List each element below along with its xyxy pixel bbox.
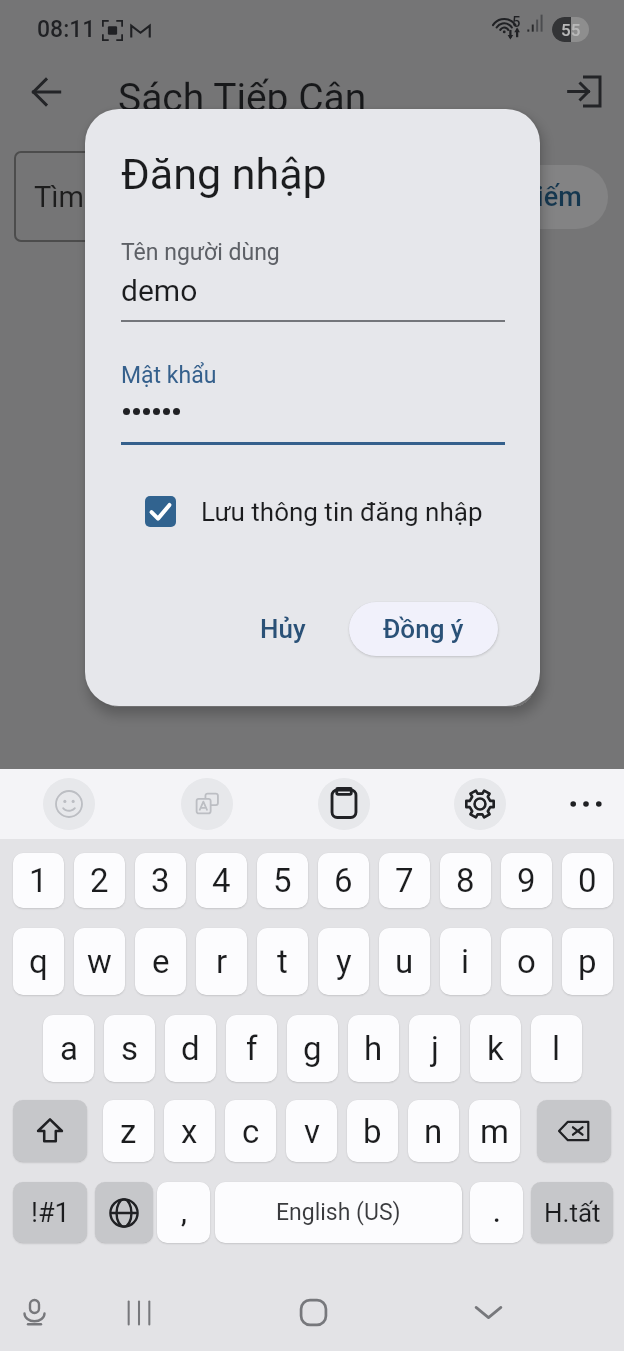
button[interactable]: Đồng ý xyxy=(349,602,498,656)
button[interactable]: h xyxy=(348,1015,399,1082)
button[interactable]: . xyxy=(470,1182,523,1243)
staticText: Lưu thông tin đăng nhập xyxy=(201,497,483,527)
staticText: l xyxy=(552,1029,561,1068)
button[interactable]: Translate xyxy=(181,778,233,830)
staticText: q xyxy=(29,942,48,981)
staticText: Tìm kiếm xyxy=(469,181,582,213)
button[interactable]: H.tất xyxy=(531,1182,613,1243)
button[interactable]: !#1 xyxy=(13,1182,87,1243)
staticText: 0 xyxy=(578,861,597,900)
button[interactable]: Change language xyxy=(95,1182,153,1243)
staticText: e xyxy=(152,942,170,981)
button[interactable]: e xyxy=(135,928,186,995)
staticText: 5 xyxy=(512,13,521,31)
button[interactable]: k xyxy=(470,1015,521,1082)
button[interactable]: Clipboard xyxy=(318,778,370,830)
button[interactable]: Hủy xyxy=(237,602,329,656)
staticText: Hủy xyxy=(260,614,306,644)
staticText: g xyxy=(303,1029,322,1068)
staticText: 1 xyxy=(29,861,48,900)
button[interactable]: Voice input xyxy=(0,1274,68,1351)
button[interactable]: 7 xyxy=(379,853,430,908)
button[interactable]: g xyxy=(287,1015,338,1082)
button[interactable]: Hide keyboard xyxy=(454,1274,522,1351)
button[interactable]: 2 xyxy=(74,853,125,908)
staticText: c xyxy=(242,1112,260,1151)
button[interactable]: p xyxy=(562,928,613,995)
button[interactable]: Back xyxy=(19,65,73,119)
staticText: 3 xyxy=(151,861,170,900)
button[interactable]: r xyxy=(196,928,247,995)
staticText: H.tất xyxy=(544,1198,601,1228)
staticText: w xyxy=(87,942,112,981)
button[interactable]: d xyxy=(165,1015,216,1082)
button[interactable]: x xyxy=(164,1100,215,1162)
button[interactable]: English (US) xyxy=(215,1182,462,1243)
staticText: k xyxy=(487,1029,504,1068)
staticText: z xyxy=(120,1112,137,1151)
button[interactable]: 1 xyxy=(13,853,64,908)
button[interactable]: Tìm kiếm sách... xyxy=(14,151,454,242)
button[interactable]: b xyxy=(347,1100,398,1162)
staticText: Sách Tiếp Cận xyxy=(118,75,367,121)
button[interactable]: 3 xyxy=(135,853,186,908)
staticText: 08:11 xyxy=(37,16,96,43)
button[interactable]: c xyxy=(225,1100,276,1162)
button[interactable]: More options xyxy=(560,778,612,830)
button[interactable]: n xyxy=(408,1100,459,1162)
staticText: 2 xyxy=(90,861,109,900)
button[interactable]: Tìm kiếm xyxy=(442,165,608,229)
button[interactable]: s xyxy=(104,1015,155,1082)
staticText: r xyxy=(216,942,228,981)
button[interactable]: o xyxy=(501,928,552,995)
button[interactable]: 8 xyxy=(440,853,491,908)
button[interactable]: y xyxy=(318,928,369,995)
staticText: Mật khẩu xyxy=(121,362,217,389)
button[interactable]: 6 xyxy=(318,853,369,908)
staticText: i xyxy=(461,942,470,981)
button[interactable]: 9 xyxy=(501,853,552,908)
staticText: s xyxy=(121,1029,139,1068)
button[interactable]: Lưu thông tin đăng nhập xyxy=(145,496,483,527)
staticText: t xyxy=(277,942,288,981)
button[interactable]: Recent apps xyxy=(105,1274,173,1351)
button[interactable]: z xyxy=(103,1100,154,1162)
button[interactable]: , xyxy=(157,1182,210,1243)
staticText: 9 xyxy=(517,861,536,900)
button[interactable]: 0 xyxy=(562,853,613,908)
button[interactable]: w xyxy=(74,928,125,995)
staticText: h xyxy=(364,1029,383,1068)
staticText: Đồng ý xyxy=(383,614,464,644)
staticText: a xyxy=(60,1029,78,1068)
button[interactable]: 5 xyxy=(257,853,308,908)
button[interactable]: Sign in xyxy=(557,64,611,118)
button[interactable]: Shift xyxy=(13,1100,87,1162)
button[interactable]: i xyxy=(440,928,491,995)
staticText: 4 xyxy=(212,861,231,900)
button[interactable]: u xyxy=(379,928,430,995)
button[interactable]: a xyxy=(43,1015,94,1082)
staticText: Đăng nhập xyxy=(121,149,327,199)
staticText: 8 xyxy=(456,861,475,900)
button[interactable]: j xyxy=(409,1015,460,1082)
staticText: y xyxy=(336,942,352,981)
button[interactable]: Backspace xyxy=(537,1100,611,1162)
button[interactable]: 4 xyxy=(196,853,247,908)
staticText: p xyxy=(578,942,597,981)
button[interactable]: v xyxy=(286,1100,337,1162)
button[interactable]: l xyxy=(531,1015,582,1082)
staticText: . xyxy=(493,1197,501,1229)
staticText: 5 xyxy=(273,861,292,900)
staticText: English (US) xyxy=(276,1199,401,1226)
button[interactable]: m xyxy=(469,1100,520,1162)
button[interactable]: Settings xyxy=(454,778,506,830)
staticText: 6 xyxy=(334,861,353,900)
button[interactable]: t xyxy=(257,928,308,995)
button[interactable]: Emoji xyxy=(43,778,95,830)
staticText: j xyxy=(431,1029,439,1068)
button[interactable]: Home xyxy=(279,1274,347,1351)
button[interactable]: f xyxy=(226,1015,277,1082)
button[interactable]: q xyxy=(13,928,64,995)
staticText: d xyxy=(181,1029,200,1068)
staticText: 7 xyxy=(395,861,414,900)
